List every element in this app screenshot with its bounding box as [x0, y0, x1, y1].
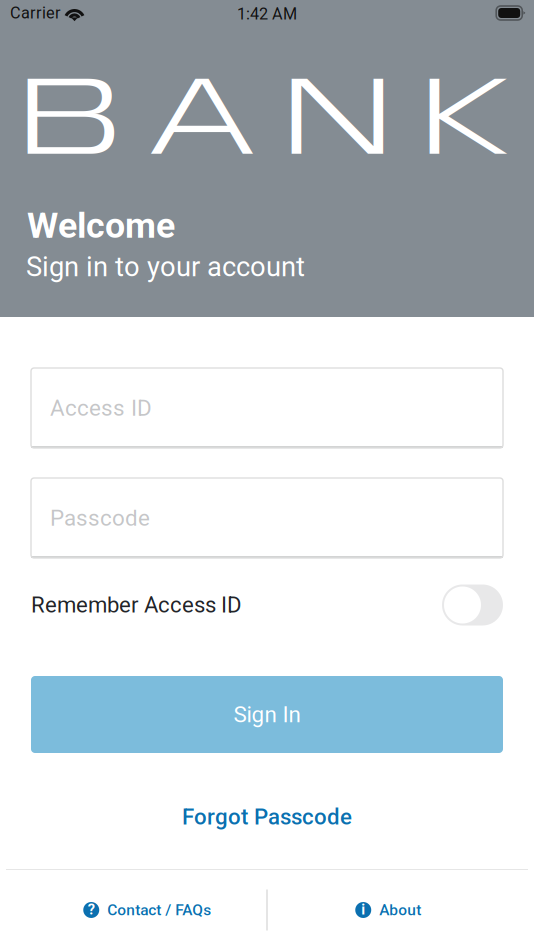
- staticText: About: [379, 901, 421, 919]
- button[interactable]: i: [267, 870, 534, 950]
- staticText: Remember Access ID: [31, 592, 242, 618]
- button[interactable]: ?: [0, 870, 266, 950]
- staticText: 1:42 AM: [237, 4, 297, 24]
- staticText: Access ID: [50, 395, 152, 421]
- staticText: Forgot Passcode: [182, 804, 352, 830]
- staticText: i: [361, 901, 365, 918]
- staticText: BANK: [20, 66, 513, 180]
- button[interactable]: Forgot Passcode: [31, 803, 503, 831]
- staticText: Contact / FAQs: [107, 901, 211, 919]
- staticText: Sign In: [233, 701, 300, 728]
- button[interactable]: Sign In: [31, 676, 503, 753]
- button[interactable]: Remember Access ID: [442, 584, 503, 625]
- staticText: Welcome: [27, 205, 175, 246]
- staticText: Sign in to your account: [26, 251, 305, 283]
- staticText: Carrier: [10, 3, 61, 23]
- staticText: Passcode: [50, 505, 150, 531]
- staticText: ?: [88, 901, 95, 918]
